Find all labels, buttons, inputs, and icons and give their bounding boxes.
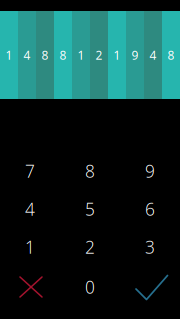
staticText: 9 — [131, 47, 138, 63]
button[interactable]: 0 — [60, 266, 120, 308]
button[interactable]: 9 — [120, 152, 180, 190]
staticText: 7 — [25, 159, 35, 182]
staticText: 8 — [59, 47, 66, 63]
button[interactable]: Confirm — [120, 266, 180, 308]
staticText: 1 — [25, 235, 35, 258]
staticText: 9 — [145, 159, 155, 182]
staticText: 8 — [167, 47, 174, 63]
button[interactable]: 5 — [60, 190, 120, 228]
staticText: 4 — [25, 197, 35, 220]
staticText: 8 — [41, 47, 48, 63]
staticText: 0 — [85, 275, 95, 298]
staticText: 6 — [145, 197, 155, 220]
staticText: 2 — [85, 235, 95, 258]
button[interactable]: Cancel — [0, 266, 60, 308]
button[interactable]: 2 — [60, 228, 120, 266]
button[interactable]: 4 — [0, 190, 60, 228]
button[interactable]: 7 — [0, 152, 60, 190]
staticText: 4 — [149, 47, 156, 63]
staticText: 1 — [77, 47, 84, 63]
staticText: 5 — [85, 197, 95, 220]
button[interactable]: 1 — [0, 228, 60, 266]
staticText: 4 — [23, 47, 30, 63]
staticText: 2 — [95, 47, 102, 63]
staticText: 1 — [5, 47, 12, 63]
button[interactable]: 3 — [120, 228, 180, 266]
staticText: 3 — [145, 235, 155, 258]
staticText: 1 — [113, 47, 120, 63]
staticText: 8 — [85, 159, 95, 182]
button[interactable]: 8 — [60, 152, 120, 190]
button[interactable]: 6 — [120, 190, 180, 228]
